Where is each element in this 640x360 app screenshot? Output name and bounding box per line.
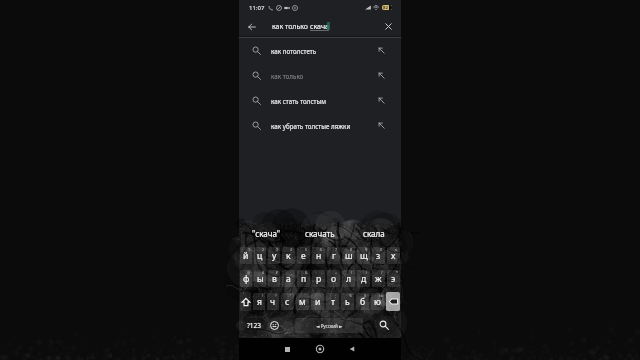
button[interactable]: Clear query	[376, 15, 401, 38]
staticText: '	[305, 293, 306, 298]
button[interactable]: _	[282, 270, 295, 287]
button[interactable]: :	[311, 293, 324, 310]
staticText: и	[315, 296, 321, 308]
button[interactable]: $	[356, 293, 369, 310]
staticText: м	[299, 296, 306, 308]
button[interactable]: )	[357, 270, 370, 287]
staticText: н	[316, 250, 322, 262]
button[interactable]: 5	[297, 247, 310, 264]
staticText: скала	[363, 228, 385, 239]
button[interactable]: Back	[340, 338, 364, 360]
button[interactable]: 0	[372, 247, 385, 264]
staticText: 82	[383, 5, 388, 10]
staticText: й	[243, 250, 249, 262]
staticText: 11:07	[249, 4, 265, 12]
button[interactable]: как стать толстым	[239, 88, 401, 113]
button[interactable]: @	[240, 270, 252, 287]
staticText: ?	[275, 293, 277, 298]
staticText: -	[321, 270, 323, 275]
staticText: ;	[335, 293, 336, 298]
staticText: 1	[248, 247, 251, 252]
button[interactable]: скачать	[293, 223, 347, 244]
staticText: как стать толстым	[271, 97, 327, 105]
button[interactable]: Backspace	[386, 292, 400, 311]
staticText: ю	[374, 296, 381, 308]
button[interactable]: 7	[327, 247, 340, 264]
button[interactable]: Back	[239, 15, 264, 38]
button[interactable]: !	[253, 293, 265, 310]
staticText: %	[349, 293, 352, 298]
button[interactable]: 4	[282, 247, 295, 264]
button[interactable]: Search	[375, 317, 392, 333]
button[interactable]: +	[327, 270, 340, 287]
staticText: у	[272, 250, 277, 262]
button[interactable]: 3	[268, 247, 280, 264]
staticText: )	[366, 270, 368, 275]
button[interactable]: Emoji	[266, 317, 283, 333]
staticText: в	[272, 273, 277, 285]
button[interactable]: ;	[326, 293, 339, 310]
staticText: р	[316, 273, 322, 285]
button[interactable]: "скача"	[239, 223, 293, 244]
staticText: 0	[380, 247, 383, 252]
button[interactable]: ?123	[243, 317, 264, 333]
staticText: 8	[350, 247, 353, 252]
button[interactable]: '	[296, 293, 309, 310]
button[interactable]: "	[281, 293, 294, 310]
staticText: о	[331, 273, 337, 285]
button[interactable]: &	[297, 270, 310, 287]
staticText: щ	[360, 250, 368, 262]
staticText: _	[291, 270, 293, 275]
staticText: п	[301, 273, 307, 285]
staticText: скачать	[305, 228, 335, 239]
button[interactable]: Shift	[240, 292, 251, 311]
staticText: 7	[335, 247, 338, 252]
button[interactable]: 1	[240, 247, 252, 264]
staticText: как только	[272, 22, 310, 32]
staticText: 6	[320, 247, 323, 252]
button[interactable]: %	[341, 293, 354, 310]
staticText: ₽	[276, 270, 279, 275]
staticText: как убрать толстые ляжки	[271, 122, 351, 130]
staticText: #	[262, 270, 265, 275]
staticText: б	[360, 296, 366, 308]
staticText: ц	[257, 250, 263, 262]
staticText: как потолстеть	[271, 47, 317, 55]
staticText: з	[376, 250, 381, 262]
staticText: +	[335, 270, 338, 275]
staticText: ы	[257, 273, 264, 285]
button[interactable]: ?	[267, 293, 279, 310]
button[interactable]: *	[387, 270, 400, 287]
staticText: @	[247, 270, 251, 275]
button[interactable]: 6	[312, 247, 325, 264]
button[interactable]: как потолстеть	[239, 38, 401, 63]
staticText: т	[331, 296, 335, 308]
button[interactable]: -	[312, 270, 325, 287]
button[interactable]: 9	[357, 247, 370, 264]
staticText: ь	[345, 296, 350, 308]
button[interactable]: 8	[342, 247, 355, 264]
staticText: $	[364, 293, 367, 298]
button[interactable]: скала	[347, 223, 401, 244]
staticText: *	[396, 270, 398, 275]
button[interactable]: Recents	[275, 338, 299, 360]
button[interactable]: #	[254, 270, 266, 287]
button[interactable]: как убрать толстые ляжки	[239, 113, 401, 138]
staticText: !	[262, 293, 263, 298]
button[interactable]: ₽	[268, 270, 280, 287]
staticText: 9	[365, 247, 368, 252]
button[interactable]: ◄ Русский ►	[295, 318, 363, 333]
staticText: 4	[290, 247, 293, 252]
staticText: ъ	[395, 247, 398, 252]
button[interactable]: (	[342, 270, 355, 287]
staticText: 5	[305, 247, 308, 252]
staticText: ф	[243, 273, 250, 285]
button[interactable]: №	[371, 293, 384, 310]
button[interactable]: как только	[239, 63, 401, 88]
button[interactable]: Home	[308, 338, 332, 360]
staticText: х	[391, 250, 396, 262]
staticText: "	[290, 293, 292, 298]
button[interactable]: /	[372, 270, 385, 287]
button[interactable]: ъ	[387, 247, 400, 264]
button[interactable]: 2	[254, 247, 266, 264]
